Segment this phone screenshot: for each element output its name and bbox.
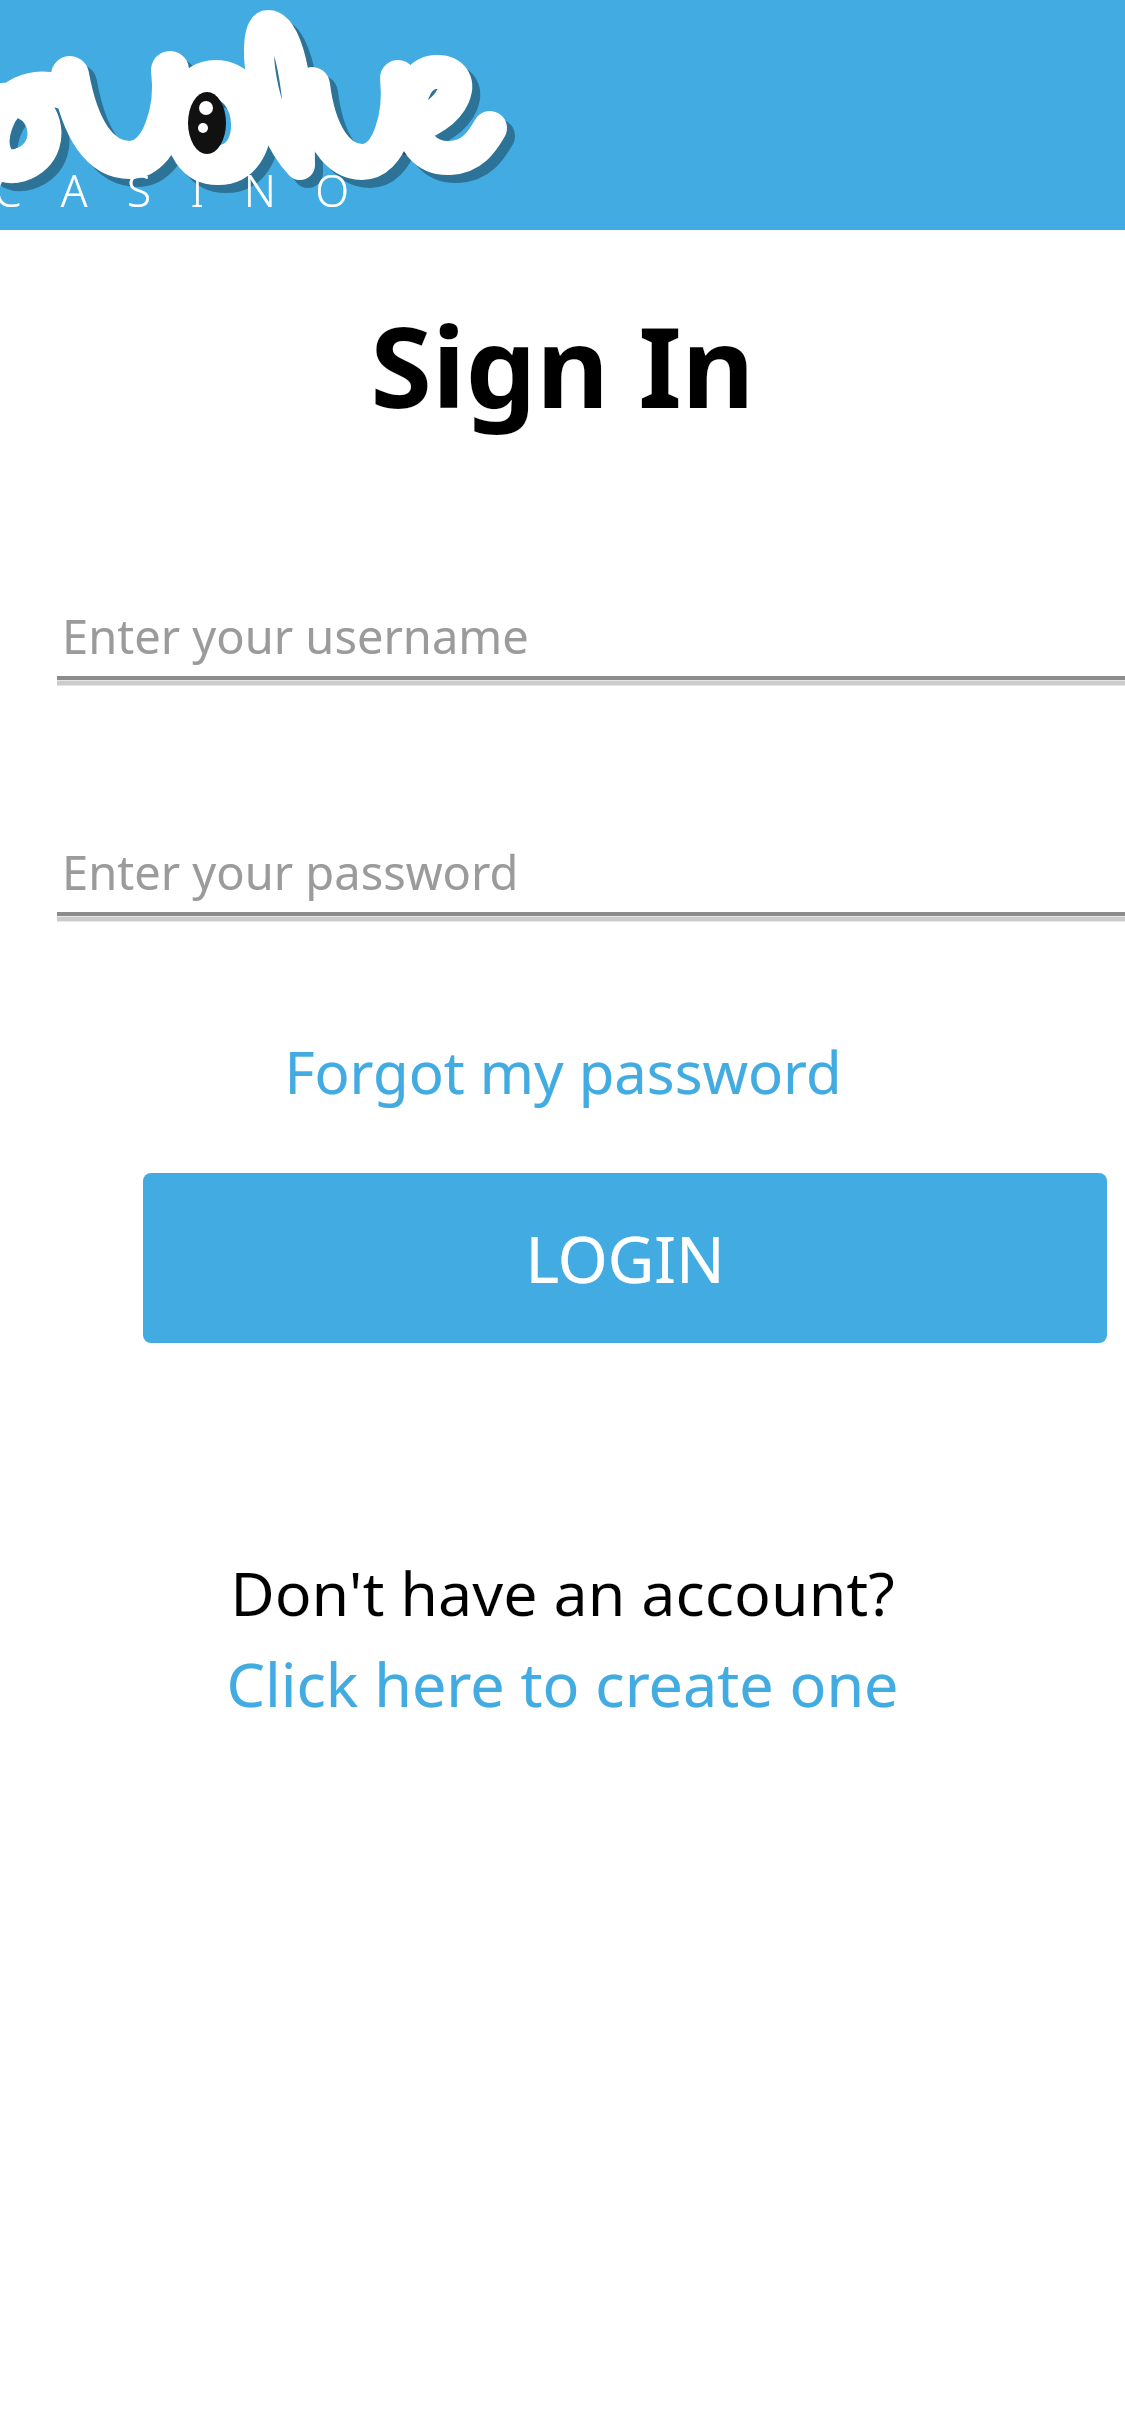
- other: Evolve Casino: [0, 0, 1125, 230]
- staticText: Sign In: [0, 288, 1125, 441]
- staticText: Enter your password: [62, 840, 519, 904]
- button[interactable]: Enter your username: [57, 596, 1125, 692]
- staticText: Don't have an account?: [230, 1551, 895, 1634]
- staticText: Click here to create one: [226, 1642, 899, 1725]
- button[interactable]: LOGIN: [143, 1173, 1107, 1343]
- staticText: LOGIN: [525, 1215, 725, 1302]
- button[interactable]: Enter your password: [57, 832, 1125, 928]
- staticText: Enter your username: [62, 604, 529, 668]
- button[interactable]: Forgot my password: [0, 1026, 1125, 1116]
- staticText: C A S I N O: [0, 160, 363, 220]
- staticText: Forgot my password: [284, 1032, 842, 1111]
- button[interactable]: Click here to create one: [226, 1642, 899, 1725]
